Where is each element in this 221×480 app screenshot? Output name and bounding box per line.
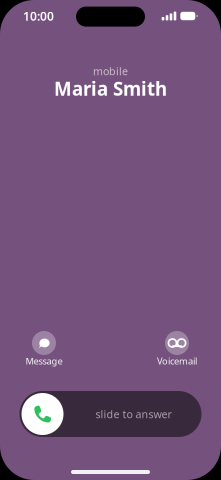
button[interactable]: Voicemail [142,331,212,367]
staticText: Voicemail [157,355,197,367]
staticText: slide to answer [95,407,171,421]
staticText: 10:00 [23,8,54,24]
button[interactable]: slide to answer [19,391,201,437]
staticText: Maria Smith [54,76,167,101]
staticText: Message [25,355,62,367]
button[interactable]: Message [9,331,79,367]
staticText: mobile [93,64,128,78]
